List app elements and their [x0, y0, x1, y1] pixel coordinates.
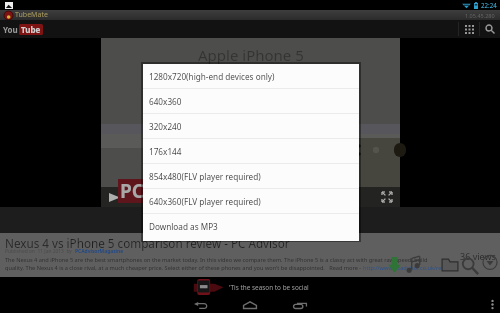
button[interactable]: 854x480(FLV player required) [143, 164, 359, 189]
button[interactable]: Apps [459, 20, 479, 38]
button[interactable]: Search [461, 257, 479, 275]
staticText: 640x360(FLV player required) [149, 196, 261, 207]
button[interactable]: Downloads folder [441, 257, 459, 272]
button[interactable]: 640x360(FLV player required) [143, 189, 359, 214]
button[interactable]: 640x360 [143, 89, 359, 114]
staticText: PCAdvisorMagazine [75, 248, 124, 255]
staticText: 36 views [460, 250, 496, 262]
button[interactable]: Download audio [405, 255, 421, 274]
staticText: Published on 11 Jan 2013 by [5, 248, 75, 255]
button[interactable]: 1280x720(high-end devices only) [143, 64, 359, 89]
button[interactable]: Back [192, 298, 208, 312]
staticText: Tube [21, 24, 41, 35]
staticText: TubeMate [15, 10, 48, 20]
button[interactable]: 'Tis the season to be social [0, 277, 500, 296]
staticText: 640x360 [149, 96, 182, 107]
other: Fullscreen [382, 192, 392, 202]
button[interactable]: Recent apps [292, 298, 308, 312]
button[interactable]: Download as MP3 [143, 214, 359, 239]
button[interactable]: TubeMate [4, 10, 48, 20]
button[interactable]: 176x144 [143, 139, 359, 164]
staticText: 176x144 [149, 146, 182, 157]
staticText: Download as MP3 [149, 221, 218, 232]
button[interactable]: Home [242, 298, 258, 312]
button[interactable]: Search [480, 20, 500, 38]
staticText: 320x240 [149, 121, 182, 132]
button[interactable]: You [3, 24, 43, 35]
button[interactable]: 320x240 [143, 114, 359, 139]
button[interactable]: Show more [482, 255, 498, 271]
staticText: Apple iPhone 5 [198, 45, 304, 65]
staticText: The Nexus 4 and iPhone 5 are the best sm… [5, 256, 428, 264]
staticText: 22:24 [481, 1, 497, 9]
staticText: 1.05.45.280 [465, 12, 495, 19]
staticText: PC [120, 178, 144, 202]
staticText: 'Tis the season to be social [229, 283, 309, 292]
button[interactable]: Published on 11 Jan 2013 by [5, 248, 124, 255]
other: Play [109, 193, 120, 202]
button[interactable]: Download [388, 257, 401, 273]
staticText: 1280x720(high-end devices only) [149, 71, 275, 82]
button[interactable]: More options [487, 297, 497, 312]
staticText: Nexus 4 vs iPhone 5 comparison review - … [5, 235, 290, 251]
staticText: quality. The Nexus 4 is a close rival, a… [5, 264, 363, 272]
staticText: 854x480(FLV player required) [149, 171, 261, 182]
staticText: http://www.pcadvisor.co.uk/rev... [363, 264, 449, 272]
staticText: You [3, 24, 18, 35]
